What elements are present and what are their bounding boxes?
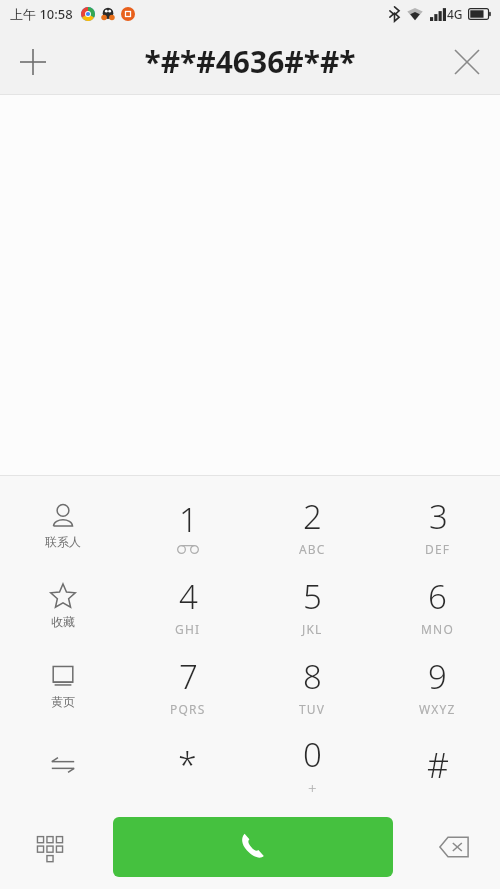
- staticText: 上午 10:58: [10, 5, 73, 23]
- staticText: *#*#4636#*#*: [144, 41, 356, 82]
- button[interactable]: 6: [375, 565, 500, 645]
- button[interactable]: *: [125, 725, 250, 805]
- staticText: 4G: [447, 6, 463, 22]
- staticText: ABC: [299, 541, 326, 557]
- staticText: 黄页: [51, 694, 75, 709]
- button[interactable]: 4: [125, 565, 250, 645]
- staticText: 0: [303, 732, 322, 777]
- button[interactable]: 8: [250, 645, 375, 725]
- button[interactable]: #: [375, 725, 500, 805]
- button[interactable]: Close: [434, 29, 500, 95]
- staticText: 6: [428, 574, 447, 619]
- button[interactable]: Contacts: [0, 486, 125, 565]
- button[interactable]: 1: [125, 486, 250, 565]
- staticText: 4: [179, 574, 198, 619]
- button[interactable]: 9: [375, 645, 500, 725]
- staticText: 2: [303, 494, 322, 539]
- staticText: PQRS: [170, 701, 206, 717]
- staticText: DEF: [425, 541, 451, 557]
- staticText: *: [178, 742, 197, 788]
- button[interactable]: Call: [113, 817, 393, 877]
- button[interactable]: 0: [250, 725, 375, 805]
- staticText: 7: [179, 654, 198, 699]
- button[interactable]: Favorites: [0, 565, 125, 645]
- button[interactable]: Add contact: [0, 29, 66, 95]
- staticText: 收藏: [51, 614, 75, 629]
- staticText: 8: [303, 654, 322, 699]
- button[interactable]: 5: [250, 565, 375, 645]
- staticText: 9: [428, 654, 447, 699]
- staticText: 联系人: [45, 534, 81, 549]
- staticText: WXYZ: [419, 701, 456, 717]
- button[interactable]: 2: [250, 486, 375, 565]
- staticText: GHI: [175, 621, 201, 637]
- staticText: TUV: [299, 701, 326, 717]
- button[interactable]: Switch: [0, 725, 125, 805]
- button[interactable]: 3: [375, 486, 500, 565]
- button[interactable]: 7: [125, 645, 250, 725]
- button[interactable]: Dialpad: [22, 819, 78, 875]
- staticText: 3: [429, 494, 448, 539]
- staticText: 5: [303, 574, 322, 619]
- staticText: #: [427, 742, 449, 788]
- staticText: +: [308, 778, 317, 798]
- button[interactable]: Backspace: [426, 819, 482, 875]
- button[interactable]: Yellow pages: [0, 645, 125, 725]
- staticText: MNO: [421, 621, 454, 637]
- staticText: 1: [179, 497, 198, 542]
- staticText: JKL: [302, 621, 323, 637]
